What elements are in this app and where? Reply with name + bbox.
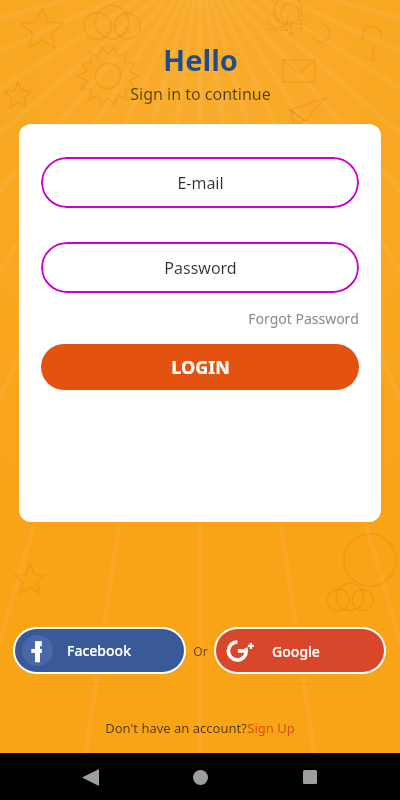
staticText: Password	[164, 257, 237, 279]
button[interactable]: Sign Up	[247, 719, 295, 737]
button[interactable]: LOGIN	[41, 344, 359, 390]
staticText: Google	[272, 642, 320, 661]
button[interactable]: Home	[180, 757, 220, 797]
button[interactable]: Back	[70, 757, 110, 797]
staticText: Don't have an account?	[105, 719, 247, 737]
button[interactable]: E-mail	[41, 157, 359, 208]
staticText: Hello	[163, 40, 238, 79]
button[interactable]: Facebook	[15, 629, 184, 672]
staticText: Facebook	[67, 641, 131, 660]
staticText: Sign Up	[247, 719, 295, 737]
staticText: LOGIN	[171, 355, 230, 380]
button[interactable]: Password	[41, 242, 359, 293]
button[interactable]: Google	[216, 629, 384, 672]
button[interactable]: Forgot Password	[19, 309, 359, 328]
staticText: E-mail	[177, 172, 224, 194]
staticText: Or	[193, 643, 208, 659]
button[interactable]: Recent apps	[290, 757, 330, 797]
staticText: Forgot Password	[248, 309, 359, 328]
staticText: Sign in to continue	[130, 83, 271, 105]
